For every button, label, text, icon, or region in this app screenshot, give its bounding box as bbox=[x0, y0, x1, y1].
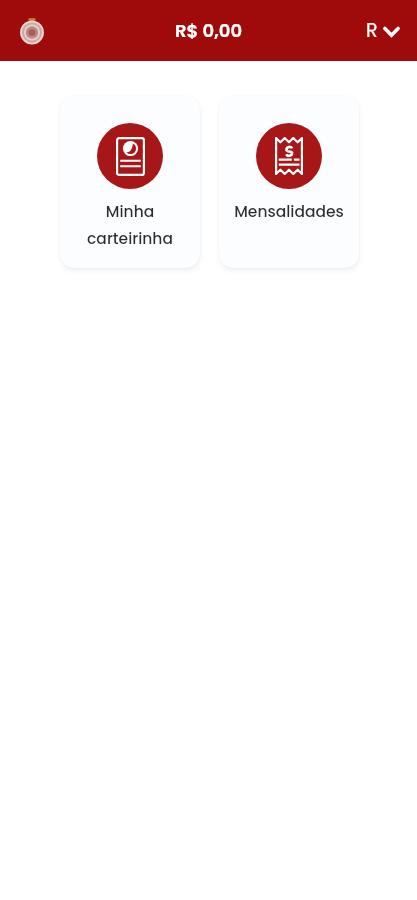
staticText: Mensalidades bbox=[234, 201, 344, 223]
button[interactable]: Minha carteirinha bbox=[60, 96, 200, 268]
button[interactable]: Mensalidades bbox=[219, 96, 359, 268]
button[interactable]: R bbox=[366, 17, 399, 44]
staticText: R$ 0,00 bbox=[175, 18, 243, 43]
button[interactable]: Escudo do clube bbox=[19, 15, 45, 46]
staticText: R bbox=[366, 17, 378, 44]
staticText: Minha carteirinha bbox=[66, 201, 194, 249]
